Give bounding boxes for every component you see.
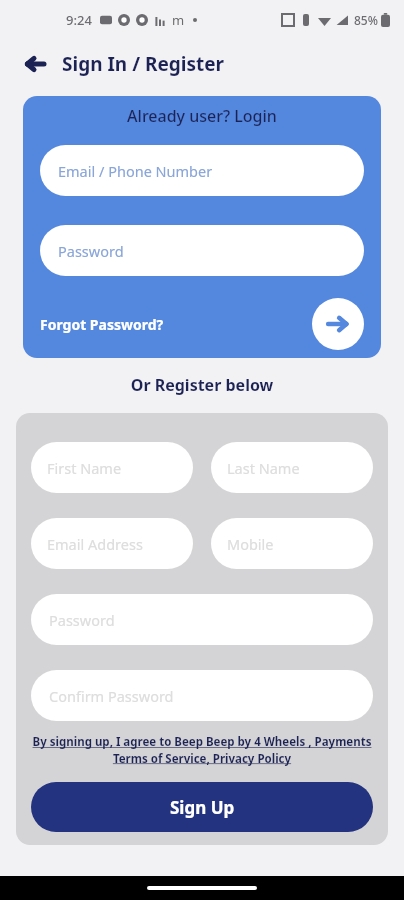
staticText: First Name xyxy=(47,458,122,478)
button[interactable]: Mobile xyxy=(211,518,373,569)
button[interactable]: Email / Phone Number xyxy=(40,145,364,196)
staticText: Password xyxy=(58,241,124,261)
button[interactable]: Submit login xyxy=(312,298,364,350)
button[interactable]: Back xyxy=(18,47,52,81)
staticText: Last Name xyxy=(227,458,300,478)
staticText: Email Address xyxy=(47,534,143,554)
staticText: Sign In / Register xyxy=(62,51,225,77)
staticText: Email / Phone Number xyxy=(58,161,213,181)
button[interactable]: Forgot Password? xyxy=(40,309,164,340)
staticText: 85% xyxy=(354,12,378,28)
staticText: Forgot Password? xyxy=(40,315,164,334)
button[interactable]: Password xyxy=(40,225,364,276)
staticText: Password xyxy=(49,610,115,630)
button[interactable]: First Name xyxy=(31,442,193,493)
button[interactable]: Password xyxy=(31,594,373,645)
staticText: Mobile xyxy=(227,534,274,554)
staticText: m xyxy=(172,11,185,29)
button[interactable]: Confirm Password xyxy=(31,670,373,721)
staticText: Already user? Login xyxy=(40,105,364,127)
button[interactable]: Last Name xyxy=(211,442,373,493)
button[interactable]: Email Address xyxy=(31,518,193,569)
staticText: 9:24 xyxy=(66,11,92,29)
staticText: Or Register below xyxy=(0,374,404,396)
staticText: Confirm Password xyxy=(49,686,174,706)
staticText: Sign Up xyxy=(170,796,235,819)
button[interactable]: Sign Up xyxy=(31,782,373,832)
button[interactable]: By signing up, I agree to Beep Beep by 4… xyxy=(31,734,373,766)
